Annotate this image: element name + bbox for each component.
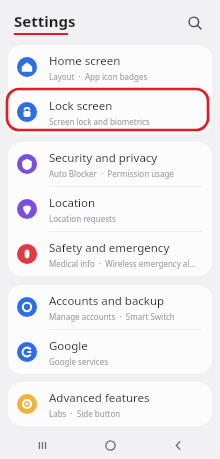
button[interactable]: Accounts and backup: [8, 285, 212, 329]
button[interactable]: Location: [8, 187, 212, 231]
staticText: Location: [49, 195, 96, 211]
staticText: Safety and emergency: [49, 240, 170, 256]
staticText: Layout · App icon badges: [49, 71, 148, 82]
staticText: Advanced features: [49, 390, 150, 406]
staticText: Accounts and backup: [49, 293, 165, 309]
button[interactable]: Security and privacy: [8, 142, 212, 186]
button[interactable]: Home screen: [8, 45, 212, 89]
button[interactable]: Lock screen: [8, 90, 212, 134]
staticText: Manage accounts · Smart Switch: [49, 311, 175, 322]
staticText: Google services: [49, 356, 109, 367]
staticText: Lock screen: [49, 98, 113, 114]
button[interactable]: Recent apps: [30, 433, 54, 457]
staticText: Screen lock and biometrics: [49, 116, 150, 127]
staticText: Auto Blocker · Permission usage: [49, 168, 174, 179]
staticText: Security and privacy: [49, 150, 158, 166]
staticText: Settings: [14, 11, 76, 31]
staticText: Google: [49, 338, 88, 354]
button[interactable]: Google: [8, 330, 212, 374]
staticText: Home screen: [49, 53, 121, 69]
button[interactable]: Back: [166, 433, 190, 457]
button[interactable]: Home: [98, 433, 122, 457]
button[interactable]: Safety and emergency: [8, 232, 212, 276]
staticText: Location requests: [49, 213, 116, 224]
button[interactable]: Search: [182, 10, 208, 36]
staticText: Labs · Side button: [49, 408, 121, 419]
staticText: Medical info · Wireless emergency alerts: [49, 258, 200, 269]
button[interactable]: Advanced features: [8, 382, 212, 426]
